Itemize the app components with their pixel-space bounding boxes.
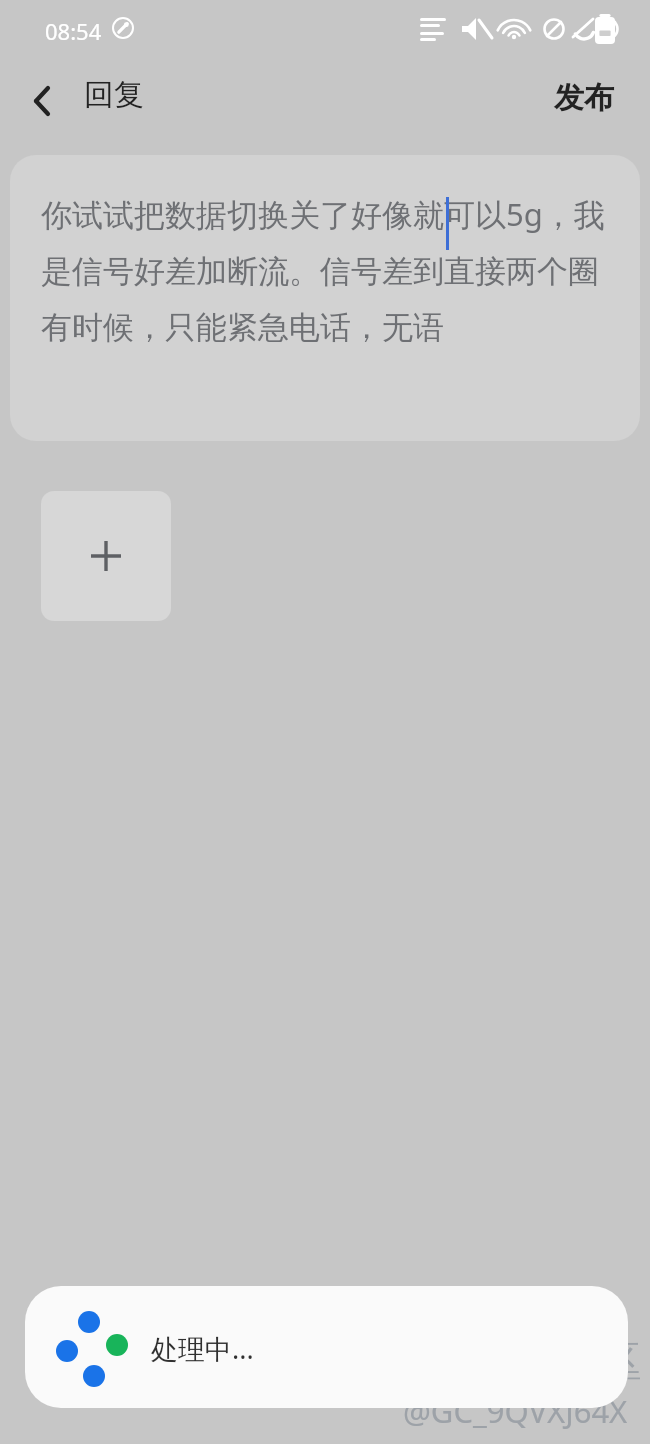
staticText: 08:54 [45, 16, 102, 46]
button[interactable]: Back [14, 73, 70, 129]
staticText: 回复 [84, 76, 144, 114]
staticText: 有时候，只能紧急电话，无语 [41, 308, 444, 347]
staticText: 盖乐世社区 [460, 1336, 640, 1381]
staticText: 是信号好差加断流。信号差到直接两个圈 [41, 252, 599, 291]
button[interactable]: 处理中... [25, 1286, 628, 1408]
staticText: 你试试把数据切换关了好像就可以5g，我 [41, 193, 605, 235]
staticText: 发布 [554, 79, 614, 117]
button[interactable]: Add image [41, 491, 171, 621]
staticText: 处理中... [151, 1330, 254, 1367]
button[interactable]: 你试试把数据切换关了好像就可以5g，我 [10, 155, 640, 441]
button[interactable]: 发布 [536, 66, 632, 130]
staticText: @GC_9QVXJ64X [403, 1390, 628, 1432]
